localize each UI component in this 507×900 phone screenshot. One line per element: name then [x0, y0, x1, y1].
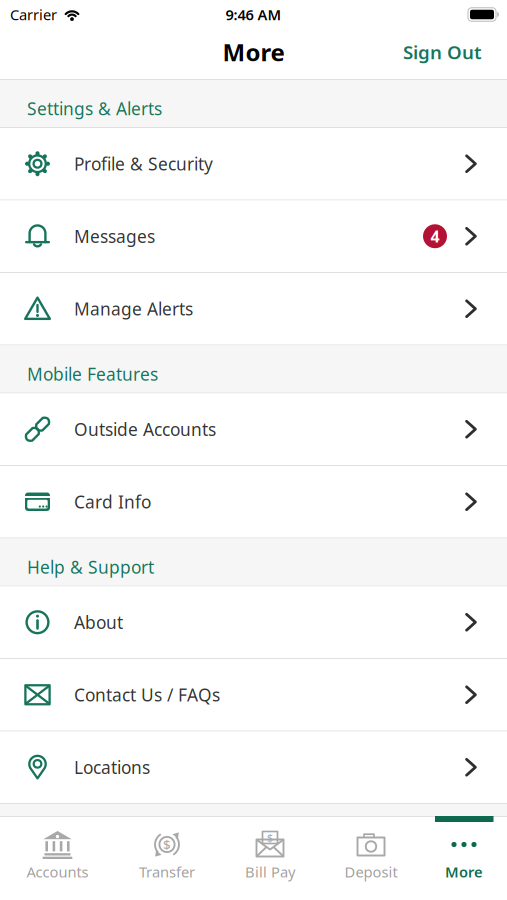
staticText: Manage Alerts: [74, 297, 193, 320]
button[interactable]: Sign Out: [403, 40, 482, 64]
button[interactable]: $: [115, 816, 219, 900]
staticText: More: [445, 862, 483, 881]
staticText: $: [163, 836, 171, 853]
button[interactable]: $: [219, 816, 321, 900]
staticText: Sign Out: [403, 40, 482, 64]
button[interactable]: Contact Us / FAQs: [0, 659, 507, 730]
staticText: Help & Support: [27, 555, 154, 578]
button[interactable]: Profile & Security: [0, 128, 507, 199]
staticText: Profile & Security: [74, 152, 213, 175]
staticText: Mobile Features: [27, 362, 158, 385]
staticText: Contact Us / FAQs: [74, 683, 220, 706]
button[interactable]: About: [0, 586, 507, 658]
staticText: 4: [430, 226, 439, 247]
staticText: Messages: [74, 225, 155, 248]
button[interactable]: Card Info: [0, 466, 507, 537]
button[interactable]: Deposit: [321, 816, 421, 900]
staticText: Bill Pay: [245, 862, 295, 881]
staticText: Deposit: [344, 862, 397, 881]
button[interactable]: Locations: [0, 731, 507, 803]
staticText: Outside Accounts: [74, 418, 216, 441]
staticText: Transfer: [139, 862, 195, 881]
button[interactable]: Messages: [0, 200, 507, 272]
button[interactable]: More: [421, 816, 507, 900]
staticText: Accounts: [26, 862, 88, 881]
staticText: About: [74, 611, 123, 634]
staticText: Settings & Alerts: [27, 97, 162, 120]
staticText: More: [222, 36, 284, 68]
staticText: $: [267, 830, 273, 845]
staticText: Carrier: [10, 5, 57, 24]
staticText: Card Info: [74, 490, 151, 513]
button[interactable]: Outside Accounts: [0, 393, 507, 465]
button[interactable]: Accounts: [0, 816, 115, 900]
staticText: 9:46 AM: [225, 5, 281, 24]
button[interactable]: Manage Alerts: [0, 273, 507, 344]
staticText: Locations: [74, 756, 150, 779]
